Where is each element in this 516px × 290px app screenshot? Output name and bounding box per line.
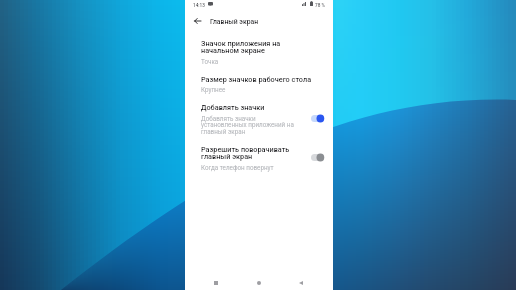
button[interactable]: Главный экран	[252, 276, 266, 290]
staticText: Значок приложения на начальном экране	[201, 39, 281, 54]
staticText: Когда телефон повернут	[201, 164, 274, 171]
staticText: 78 %	[315, 3, 325, 9]
button[interactable]: Значок приложения на начальном экране	[185, 34, 333, 66]
staticText: 14:13	[193, 3, 205, 9]
button[interactable]: Назад	[190, 14, 204, 28]
staticText: Точка	[201, 58, 219, 65]
staticText: Добавлять значки	[201, 103, 265, 112]
button[interactable]: Разрешить поворачивать главный экран	[185, 142, 333, 174]
staticText: Размер значков рабочего стола	[201, 75, 312, 84]
button[interactable]: Назад	[294, 276, 308, 290]
button[interactable]: Выключено	[311, 154, 324, 161]
staticText: Главный экран	[210, 18, 259, 26]
button[interactable]: Включено	[311, 115, 324, 122]
button[interactable]: Размер значков рабочего стола	[185, 70, 333, 96]
staticText: Добавлять значки установленных приложени…	[201, 115, 294, 136]
button[interactable]: Добавлять значки	[185, 99, 333, 139]
staticText: Разрешить поворачивать главный экран	[201, 145, 290, 160]
staticText: Крупнее	[201, 86, 226, 93]
button[interactable]: Недавние приложения	[209, 276, 223, 290]
